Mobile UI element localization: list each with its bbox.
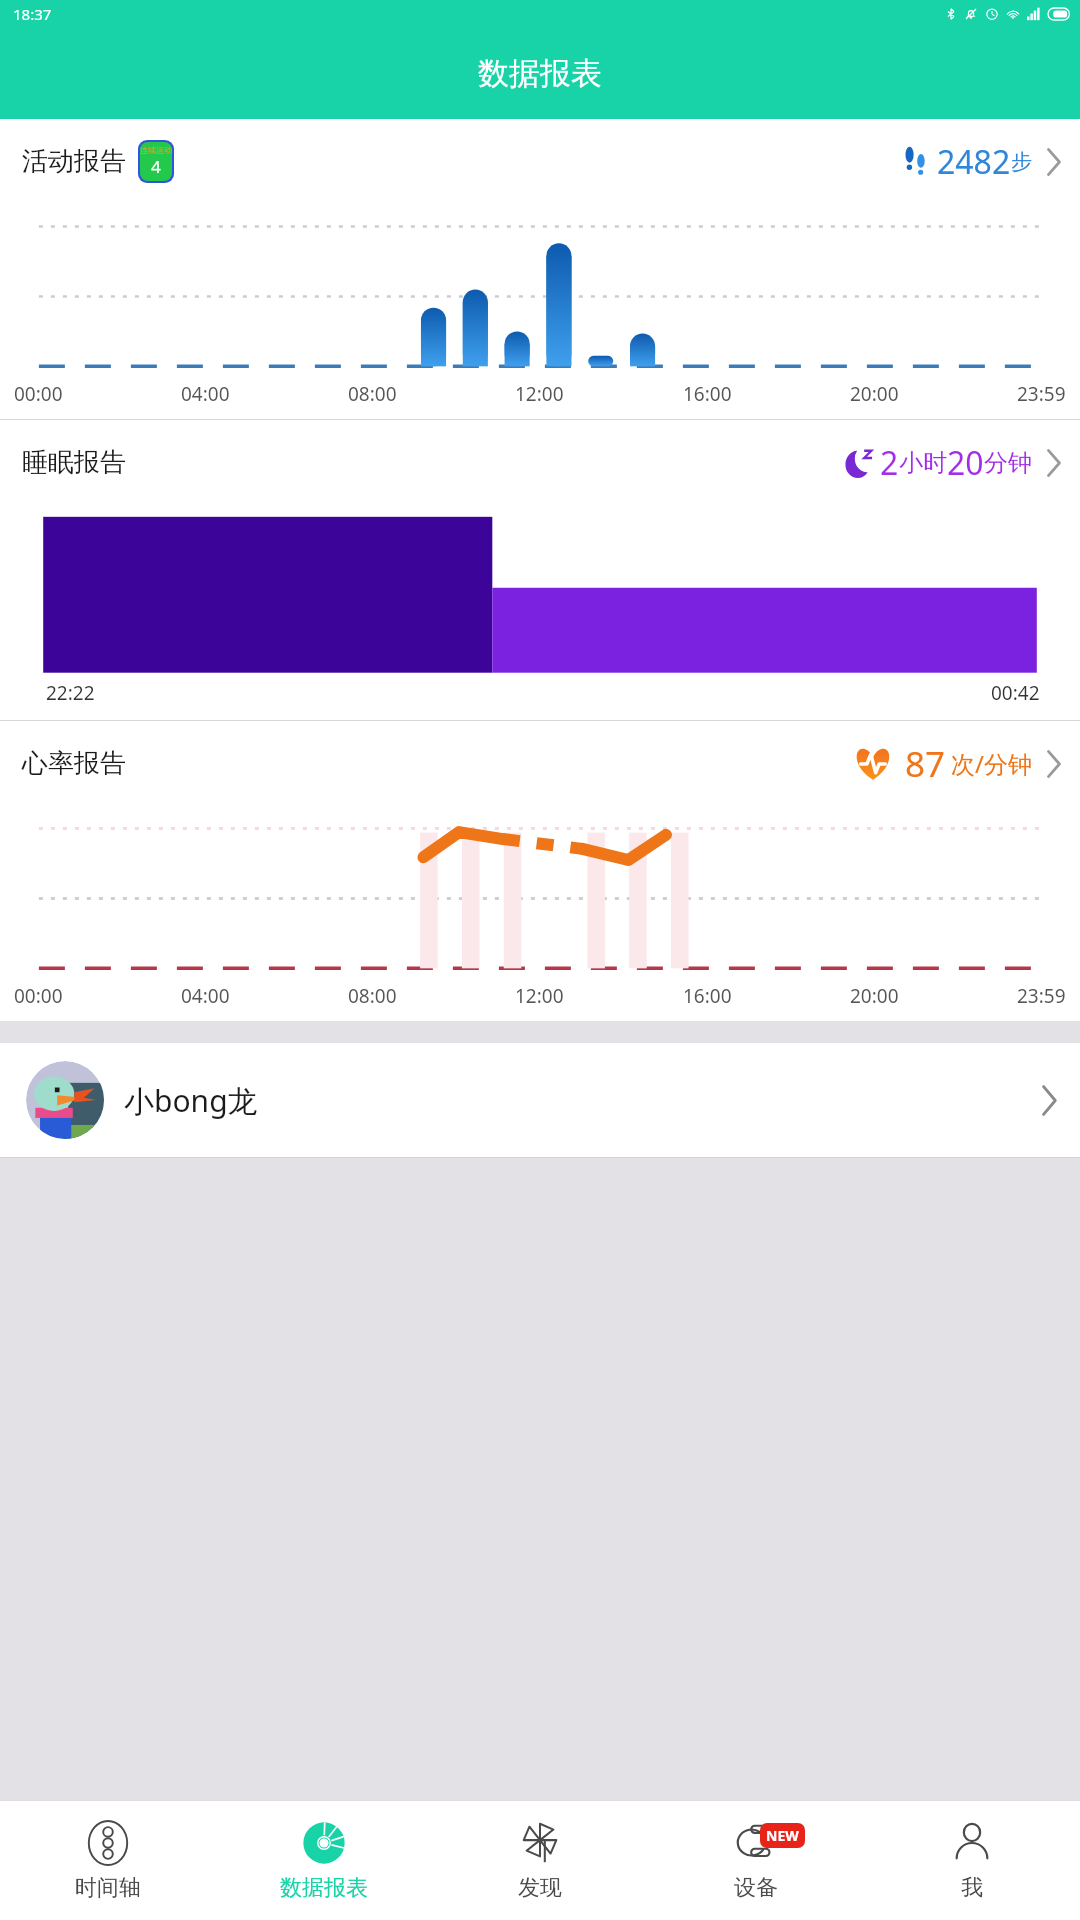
staticText: 发现: [518, 1874, 562, 1902]
staticText: 连续运动: [140, 145, 172, 155]
staticText: 00:42: [991, 680, 1040, 706]
staticText: 22:22: [46, 680, 95, 706]
staticText: 12:00: [515, 381, 564, 407]
staticText: 23:59: [1017, 983, 1066, 1009]
staticText: NEW: [766, 1826, 799, 1845]
staticText: 数据报表: [478, 54, 602, 93]
staticText: 时间轴: [75, 1874, 141, 1902]
staticText: 20:00: [850, 983, 899, 1009]
staticText: 设备: [734, 1874, 778, 1902]
button[interactable]: 小bong龙: [0, 1043, 1080, 1157]
staticText: 87: [905, 740, 946, 788]
staticText: 08:00: [348, 983, 397, 1009]
staticText: 次/分钟: [951, 747, 1032, 780]
staticText: 我: [961, 1874, 983, 1902]
staticText: 小bong龙: [124, 1080, 258, 1121]
button[interactable]: 睡眠报告: [0, 420, 1080, 505]
staticText: 16:00: [683, 381, 732, 407]
staticText: 04:00: [181, 381, 230, 407]
staticText: 2: [880, 441, 899, 485]
staticText: 08:00: [348, 381, 397, 407]
button[interactable]: 设备: [648, 1801, 864, 1920]
staticText: 00:00: [14, 983, 63, 1009]
staticText: 20:00: [850, 381, 899, 407]
staticText: 数据报表: [280, 1874, 368, 1902]
staticText: 分钟: [984, 448, 1032, 478]
staticText: 18:37: [13, 4, 52, 24]
button[interactable]: 时间轴: [0, 1801, 216, 1920]
staticText: 小时: [899, 448, 947, 478]
staticText: 20: [947, 441, 984, 485]
staticText: 16:00: [683, 983, 732, 1009]
button[interactable]: 数据报表: [216, 1801, 432, 1920]
staticText: 心率报告: [22, 747, 126, 780]
staticText: 04:00: [181, 983, 230, 1009]
staticText: 23:59: [1017, 381, 1066, 407]
button[interactable]: 活动报告: [0, 119, 1080, 204]
staticText: 2482: [937, 140, 1011, 184]
staticText: 12:00: [515, 983, 564, 1009]
staticText: 活动报告: [22, 145, 126, 178]
staticText: 00:00: [14, 381, 63, 407]
staticText: 4: [151, 155, 161, 178]
staticText: 步: [1011, 149, 1032, 175]
button[interactable]: 心率报告: [0, 721, 1080, 806]
staticText: 睡眠报告: [22, 446, 126, 479]
button[interactable]: 发现: [432, 1801, 648, 1920]
button[interactable]: 我: [864, 1801, 1080, 1920]
